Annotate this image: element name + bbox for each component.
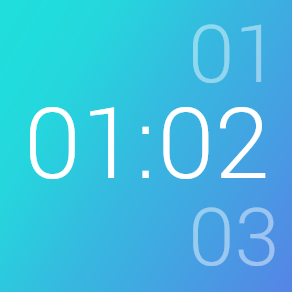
button[interactable]: 01:02 [23,75,270,218]
button[interactable]: 03 [187,181,279,292]
button[interactable]: 01 [187,0,279,113]
